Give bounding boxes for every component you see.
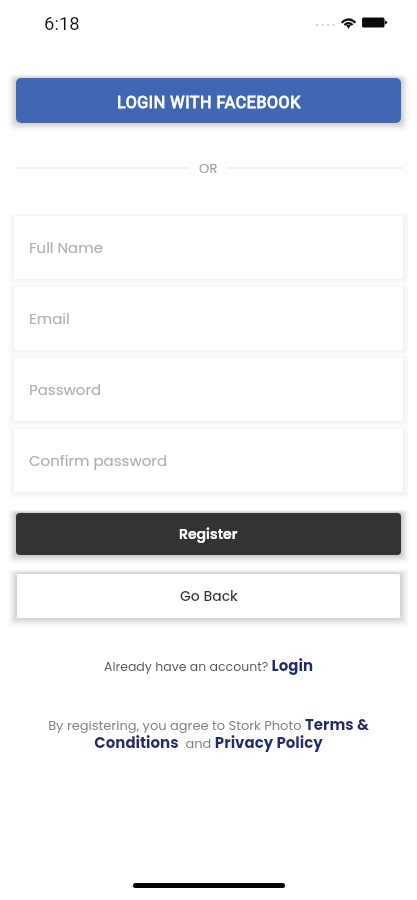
staticText: Register — [179, 524, 238, 544]
staticText: Go Back — [180, 586, 238, 606]
staticText: Confirm password — [29, 450, 168, 471]
staticText: 6:18 — [44, 13, 80, 35]
other: Status icons — [316, 16, 388, 29]
button[interactable]: Already have an account? Login — [104, 655, 314, 676]
button[interactable]: Password — [14, 358, 403, 421]
staticText: By registering, you agree to Stork Photo… — [30, 714, 387, 753]
button[interactable]: LOGIN WITH FACEBOOK — [16, 78, 401, 123]
button[interactable]: Email — [14, 287, 403, 350]
button[interactable]: Full Name — [14, 216, 403, 279]
button[interactable]: Register — [16, 513, 401, 555]
staticText: LOGIN WITH FACEBOOK — [117, 93, 301, 112]
button[interactable]: Confirm password — [14, 429, 403, 492]
staticText: Email — [29, 308, 70, 329]
staticText: OR — [199, 159, 218, 177]
staticText: Full Name — [29, 237, 103, 258]
staticText: Password — [29, 379, 102, 400]
button[interactable]: Go Back — [16, 573, 401, 619]
